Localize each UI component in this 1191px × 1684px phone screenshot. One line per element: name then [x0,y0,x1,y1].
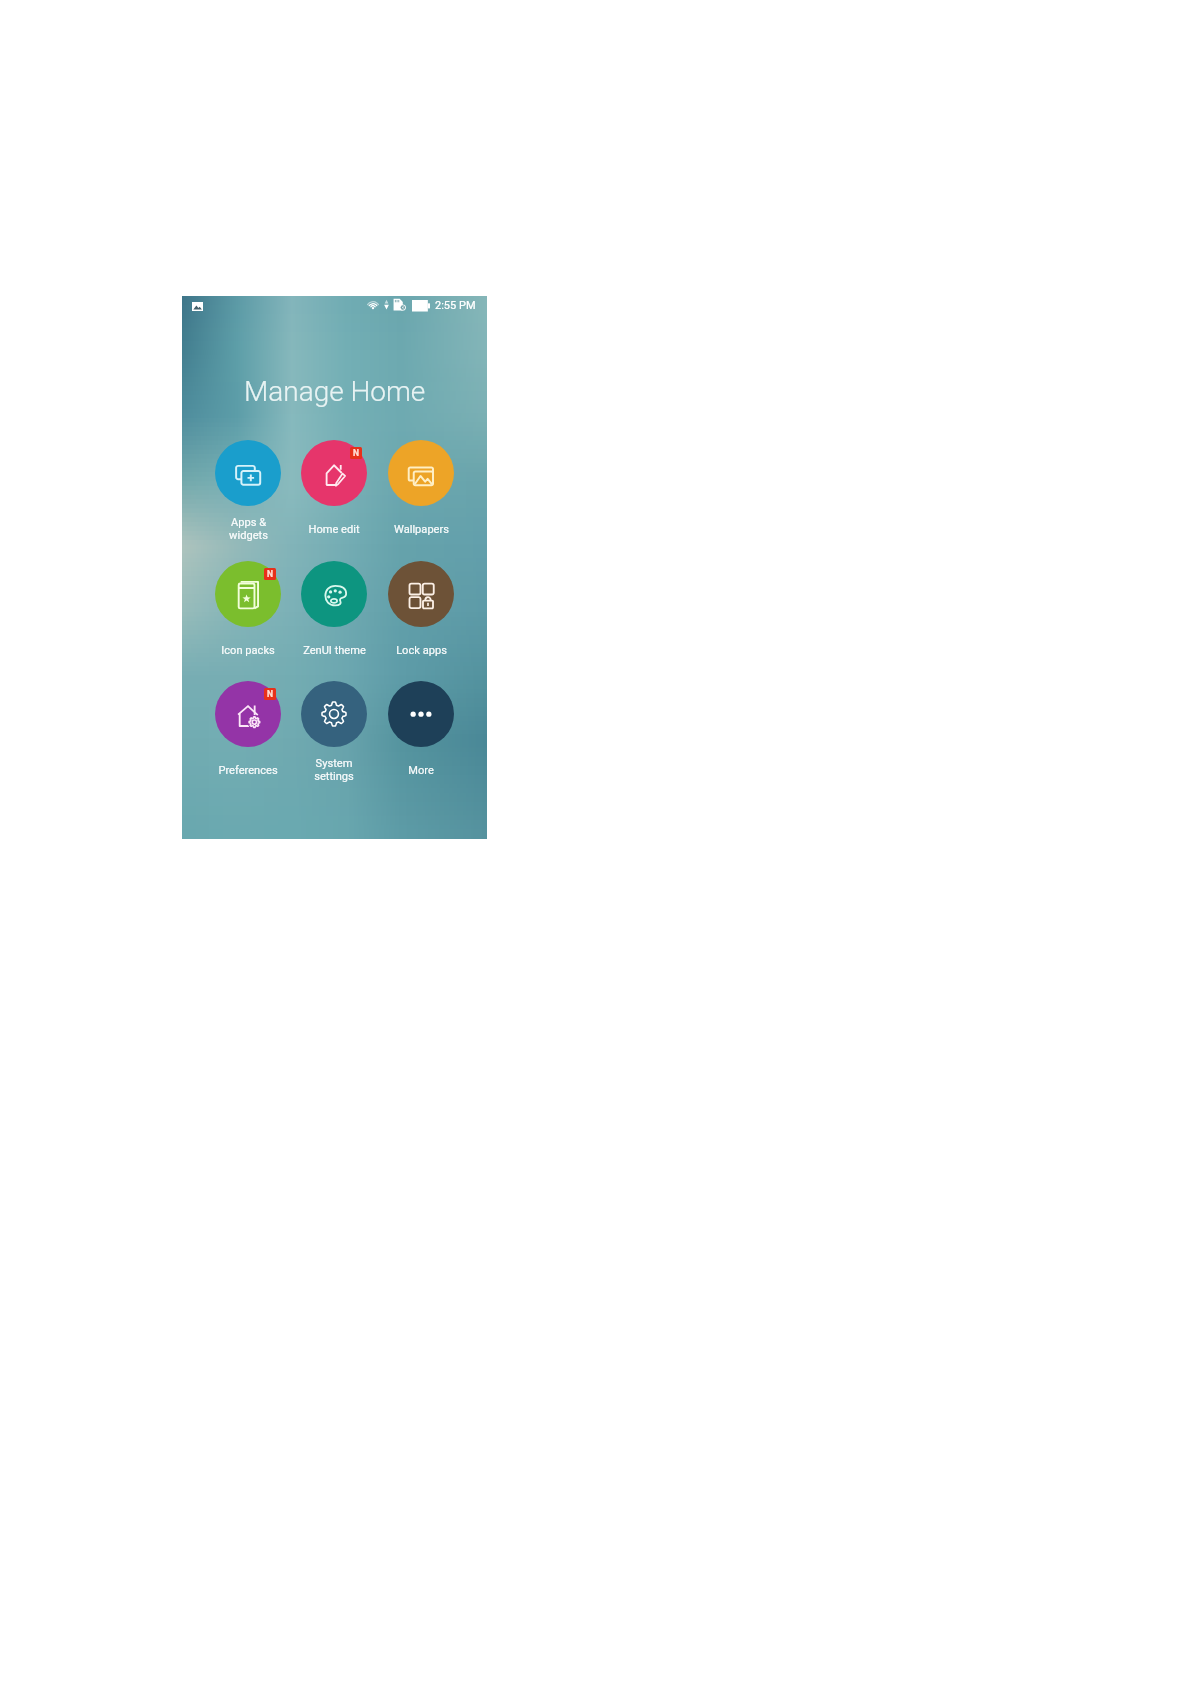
staticText: Icon packs [221,644,275,657]
button[interactable]: ZenUI theme [291,561,377,661]
button[interactable]: Apps & widgets [205,440,291,540]
button[interactable]: N [205,561,291,661]
staticText: ZenUI theme [303,644,366,657]
staticText: N [353,448,360,458]
button[interactable]: N [205,681,291,781]
staticText: More [408,764,434,777]
button[interactable]: N [291,440,377,540]
button[interactable]: Wallpapers [378,440,464,540]
button[interactable]: More [378,681,464,781]
staticText: Home edit [308,523,360,536]
staticText: Preferences [218,764,278,777]
staticText: System settings [314,757,354,783]
staticText: N [267,689,274,699]
staticText: Lock apps [396,644,447,657]
button[interactable]: System settings [291,681,377,781]
staticText: 2:55 PM [435,299,476,312]
button[interactable]: Lock apps [378,561,464,661]
staticText: Manage Home [244,375,426,408]
staticText: Wallpapers [394,523,449,536]
staticText: N [267,569,274,579]
staticText: Apps & widgets [229,516,268,542]
